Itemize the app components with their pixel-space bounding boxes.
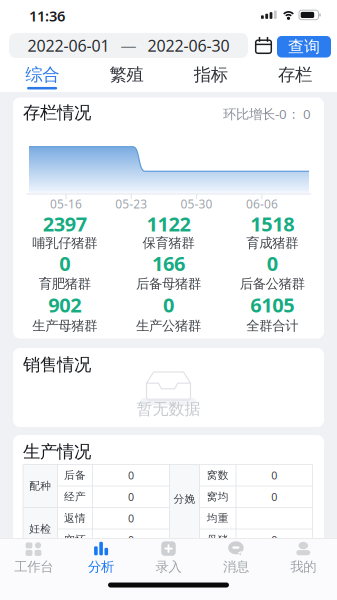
- staticText: 05-30: [181, 196, 213, 212]
- staticText: 工作台: [14, 559, 53, 575]
- staticText: 空怀: [64, 533, 86, 546]
- staticText: 11:36: [29, 6, 65, 25]
- staticText: 1122: [146, 210, 190, 237]
- staticText: 存栏情况: [23, 102, 91, 123]
- staticText: 育成猪群: [246, 235, 298, 251]
- staticText: 哺乳仔猪群: [32, 235, 97, 251]
- staticText: 6105: [250, 291, 294, 318]
- button[interactable]: 消息: [202, 543, 270, 573]
- staticText: 全群合计: [246, 318, 298, 334]
- staticText: 0: [163, 291, 174, 318]
- button[interactable]: 查询: [277, 36, 331, 57]
- staticText: 生产母猪群: [32, 318, 97, 334]
- button[interactable]: 存栏: [253, 61, 337, 90]
- staticText: 我的: [290, 559, 316, 575]
- staticText: 窝均: [207, 490, 229, 503]
- staticText: 902: [48, 291, 81, 318]
- staticText: 生产情况: [23, 441, 91, 462]
- staticText: 后备公猪群: [240, 276, 305, 292]
- staticText: 0: [271, 533, 277, 547]
- staticText: 窝数: [207, 469, 229, 482]
- staticText: 0: [128, 533, 134, 547]
- staticText: —: [120, 35, 136, 56]
- button[interactable]: 分析: [67, 543, 135, 573]
- button[interactable]: 录入: [135, 543, 202, 573]
- staticText: 经产: [64, 490, 86, 503]
- staticText: 查询: [288, 37, 320, 57]
- staticText: 分析: [88, 559, 114, 575]
- staticText: 0: [271, 490, 277, 504]
- staticText: 0: [271, 468, 277, 482]
- staticText: 2022-06-30: [147, 35, 229, 56]
- button[interactable]: 2022-06-01: [9, 33, 248, 58]
- staticText: 保育猪群: [142, 235, 194, 251]
- button[interactable]: 综合: [0, 61, 84, 90]
- staticText: 综合: [25, 64, 59, 85]
- staticText: 妊检: [29, 522, 51, 535]
- staticText: 2397: [43, 210, 87, 237]
- staticText: 2022-06-01: [27, 35, 109, 56]
- staticText: 存栏: [278, 64, 312, 85]
- button[interactable]: 选择日期: [255, 37, 272, 54]
- button[interactable]: 繁殖: [84, 61, 168, 90]
- staticText: 05-16: [50, 196, 82, 212]
- button[interactable]: 指标: [168, 61, 253, 90]
- staticText: 后备: [64, 469, 86, 482]
- staticText: 分娩: [173, 492, 195, 505]
- staticText: 育肥猪群: [39, 276, 91, 292]
- staticText: 销售情况: [23, 354, 91, 375]
- staticText: 指标: [194, 64, 228, 85]
- button[interactable]: 工作台: [0, 543, 67, 573]
- staticText: 1518: [250, 210, 294, 237]
- staticText: 均重: [207, 512, 229, 525]
- button[interactable]: 我的: [270, 543, 337, 573]
- staticText: 暂无数据: [136, 399, 200, 419]
- staticText: 05-23: [115, 196, 147, 212]
- staticText: 0: [128, 511, 134, 525]
- staticText: 录入: [155, 559, 181, 575]
- staticText: 0: [59, 250, 70, 277]
- staticText: 生产公猪群: [136, 318, 201, 334]
- staticText: 0: [267, 250, 278, 277]
- staticText: 166: [152, 250, 185, 277]
- staticText: 环比增长-0： 0: [223, 105, 311, 123]
- staticText: 0: [128, 490, 134, 504]
- staticText: 消息: [223, 559, 249, 575]
- staticText: 繁殖: [109, 64, 143, 85]
- staticText: 母猪: [207, 533, 229, 546]
- staticText: 返情: [64, 512, 86, 525]
- staticText: 后备母猪群: [136, 276, 201, 292]
- staticText: 配种: [29, 479, 51, 492]
- staticText: 0: [128, 468, 134, 482]
- staticText: 06-06: [246, 196, 278, 212]
